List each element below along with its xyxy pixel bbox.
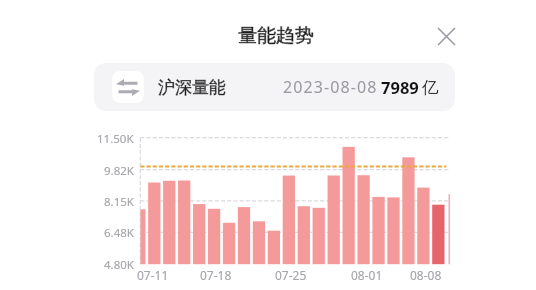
staticText: 量能趋势 [238, 24, 314, 48]
staticText: 沪深量能 [158, 77, 226, 98]
button[interactable]: 沪深量能 [94, 63, 455, 111]
staticText: 4.80K [104, 257, 134, 271]
staticText: 11.50K [97, 131, 134, 145]
staticText: 07-25 [275, 267, 307, 281]
staticText: 9.82K [104, 163, 134, 177]
staticText: 6.48K [104, 225, 134, 239]
staticText: 07-11 [137, 267, 169, 281]
staticText: 量能趋势 [238, 24, 314, 48]
staticText: 08-08 [410, 267, 442, 281]
staticText: 08-01 [351, 267, 383, 281]
staticText: 7989 [381, 76, 419, 98]
staticText: 07-18 [200, 267, 232, 281]
staticText: 2023-08-08 [283, 76, 378, 98]
button[interactable] [431, 21, 461, 51]
staticText: 亿 [422, 77, 439, 98]
staticText: 8.15K [104, 194, 134, 208]
staticText: 沪深量能 [158, 77, 226, 98]
